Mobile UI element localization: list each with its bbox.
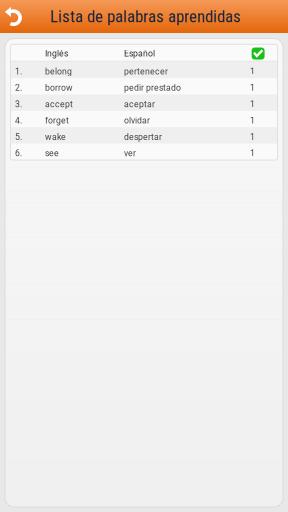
button[interactable]: 5. [10,127,277,144]
staticText: 1 [250,83,255,93]
staticText: Lista de palabras aprendidas [50,7,241,26]
staticText: despertar [124,132,162,142]
staticText: 3. [15,99,22,109]
button[interactable]: 6. [10,144,277,160]
staticText: forget [45,115,69,126]
staticText: Inglés [45,48,68,59]
staticText: Español [124,48,155,59]
staticText: 1. [15,66,22,77]
staticText: 1 [250,99,255,109]
staticText: aceptar [124,99,155,109]
staticText: borrow [45,83,73,93]
staticText: 5. [15,132,22,142]
staticText: 1 [250,148,255,158]
button[interactable]: Select all words [228,47,277,59]
staticText: 1 [250,132,255,142]
staticText: olvidar [124,115,150,126]
button[interactable]: 3. [10,94,277,111]
button[interactable]: 1. [10,62,277,78]
staticText: pertenecer [124,66,168,77]
button[interactable]: 4. [10,111,277,127]
staticText: ver [124,148,136,158]
staticText: 4. [15,115,22,126]
button[interactable]: Back [0,0,34,33]
staticText: see [45,148,59,158]
staticText: 1 [250,115,255,126]
staticText: accept [45,99,73,109]
staticText: wake [45,132,66,142]
staticText: 6. [15,148,22,158]
staticText: pedir prestado [124,83,181,93]
button[interactable]: 2. [10,78,277,95]
staticText: 2. [15,83,22,93]
staticText: 1 [250,66,255,77]
staticText: belong [45,66,72,77]
